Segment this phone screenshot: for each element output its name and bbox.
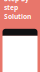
staticText: Step by step (4, 0, 29, 12)
staticText: Solution (4, 12, 31, 21)
